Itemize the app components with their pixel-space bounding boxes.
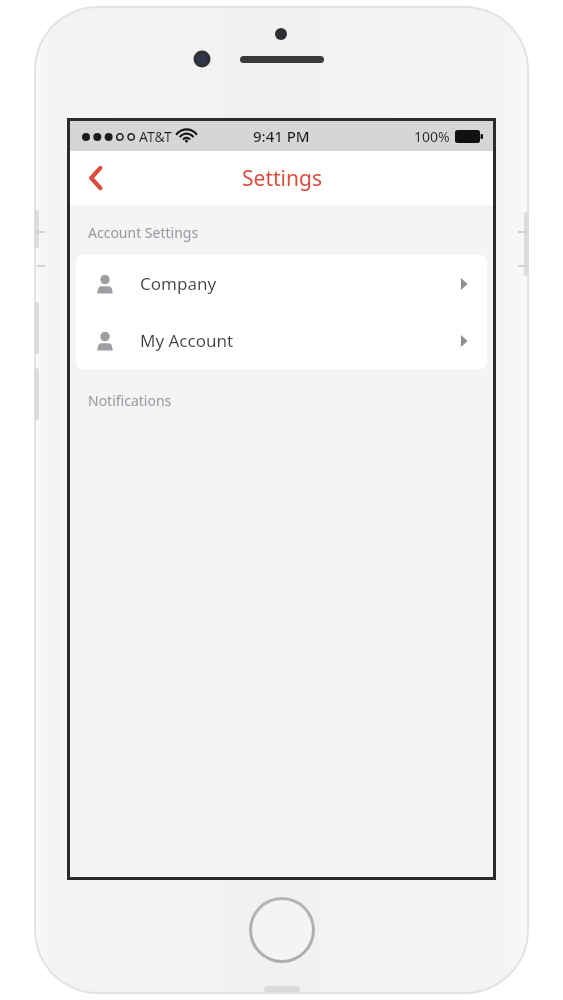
- button[interactable]: Company: [76, 255, 487, 312]
- staticText: Company: [140, 272, 217, 295]
- staticText: My Account: [140, 329, 234, 352]
- staticText: 9:41 PM: [253, 126, 310, 146]
- button[interactable]: My Account: [76, 312, 487, 369]
- button[interactable]: Back: [70, 151, 122, 205]
- staticText: Account Settings: [88, 223, 199, 242]
- staticText: Settings: [242, 164, 322, 193]
- staticText: AT&T: [139, 127, 172, 146]
- staticText: 100%: [414, 127, 450, 146]
- staticText: Notifications: [88, 391, 172, 410]
